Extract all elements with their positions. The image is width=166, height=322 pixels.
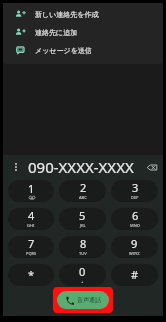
- button[interactable]: 2: [59, 180, 106, 202]
- staticText: TUV: [79, 251, 87, 256]
- staticText: 2: [80, 180, 87, 195]
- staticText: 音声通話: [77, 296, 101, 304]
- staticText: +: [81, 279, 84, 284]
- staticText: MNO: [130, 223, 140, 228]
- staticText: GHI: [27, 223, 35, 228]
- staticText: 1: [28, 181, 35, 196]
- button[interactable]: #: [111, 264, 158, 286]
- button[interactable]: 4: [8, 208, 54, 230]
- staticText: 8: [80, 236, 87, 251]
- button[interactable]: 9: [111, 236, 158, 258]
- staticText: 3: [132, 180, 139, 195]
- button[interactable]: メッセージを送信: [3, 41, 163, 59]
- staticText: 6: [132, 208, 139, 223]
- button[interactable]: 音声通話: [57, 291, 109, 309]
- staticText: メッセージを送信: [35, 46, 92, 55]
- button[interactable]: 5: [59, 208, 106, 230]
- staticText: *: [28, 267, 35, 282]
- button[interactable]: 0: [59, 264, 106, 286]
- button[interactable]: 6: [111, 208, 158, 230]
- button[interactable]: 連絡先に追加: [3, 23, 163, 41]
- button[interactable]: Backspace: [144, 159, 160, 175]
- staticText: ABC: [79, 195, 87, 200]
- staticText: 連絡先に追加: [35, 28, 78, 37]
- button[interactable]: 1: [8, 180, 54, 202]
- staticText: #: [131, 267, 139, 282]
- staticText: 新しい連絡先を作成: [35, 10, 99, 19]
- button[interactable]: 7: [8, 236, 54, 258]
- staticText: JKL: [80, 223, 86, 228]
- button[interactable]: *: [8, 264, 54, 286]
- button[interactable]: 新しい連絡先を作成: [3, 5, 163, 23]
- staticText: 5: [79, 208, 86, 223]
- staticText: DEF: [131, 195, 139, 200]
- staticText: 4: [28, 208, 35, 223]
- button[interactable]: 3: [111, 180, 158, 202]
- button[interactable]: 8: [59, 236, 106, 258]
- staticText: WXYZ: [129, 251, 140, 256]
- staticText: 090-XXXX-XXXX: [28, 157, 134, 177]
- staticText: 0: [79, 264, 86, 279]
- staticText: 7: [28, 236, 35, 251]
- button[interactable]: More options: [8, 159, 24, 175]
- staticText: 9: [131, 236, 138, 251]
- staticText: PQRS: [26, 251, 37, 256]
